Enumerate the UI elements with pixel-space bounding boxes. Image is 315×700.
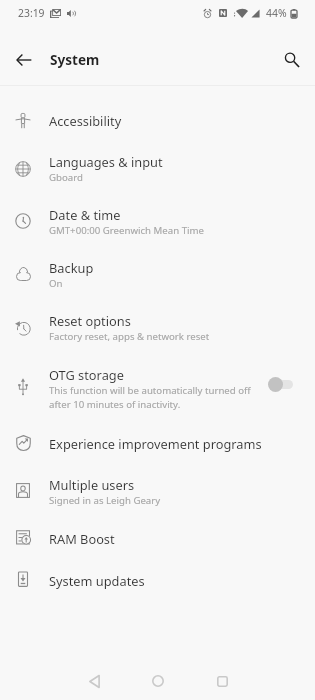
- staticText: System updates: [49, 573, 145, 589]
- staticText: 44%: [266, 6, 287, 20]
- staticText: Multiple users: [49, 477, 135, 493]
- staticText: RAM Boost: [49, 531, 115, 547]
- button[interactable]: Languages & input: [0, 142, 315, 195]
- staticText: 23:19: [18, 6, 45, 20]
- button[interactable]: RAM Boost: [0, 518, 315, 560]
- button[interactable]: OTG storage: [0, 354, 315, 423]
- staticText: GMT+00:00 Greenwich Mean Time: [49, 223, 204, 237]
- button[interactable]: Experience improvement programs: [0, 423, 315, 465]
- button[interactable]: Toggle OTG storage: [268, 376, 293, 392]
- staticText: Date & time: [49, 207, 121, 223]
- button[interactable]: System: [42, 50, 92, 76]
- staticText: OTG storage: [49, 367, 124, 383]
- button[interactable]: Recent apps: [190, 662, 254, 700]
- staticText: Languages & input: [49, 154, 163, 170]
- button[interactable]: Home: [126, 662, 190, 700]
- staticText: Accessibility: [49, 113, 122, 129]
- button[interactable]: Date & time: [0, 195, 315, 248]
- staticText: This function will be automatically turn…: [49, 383, 251, 411]
- staticText: Factory reset, apps & network reset: [49, 329, 210, 343]
- button[interactable]: Backup: [0, 248, 315, 301]
- staticText: Signed in as Leigh Geary: [49, 493, 161, 507]
- button[interactable]: Navigate up: [4, 37, 44, 77]
- button[interactable]: Multiple users: [0, 465, 315, 518]
- staticText: On: [49, 276, 63, 290]
- button[interactable]: Reset options: [0, 301, 315, 354]
- staticText: Reset options: [49, 313, 131, 329]
- staticText: Backup: [49, 260, 94, 276]
- button[interactable]: Search: [272, 40, 312, 80]
- staticText: Gboard: [49, 170, 83, 184]
- button[interactable]: Back: [62, 662, 126, 700]
- button[interactable]: Accessibility: [0, 100, 315, 142]
- staticText: Experience improvement programs: [49, 436, 262, 452]
- button[interactable]: System updates: [0, 560, 315, 602]
- staticText: System: [50, 50, 100, 69]
